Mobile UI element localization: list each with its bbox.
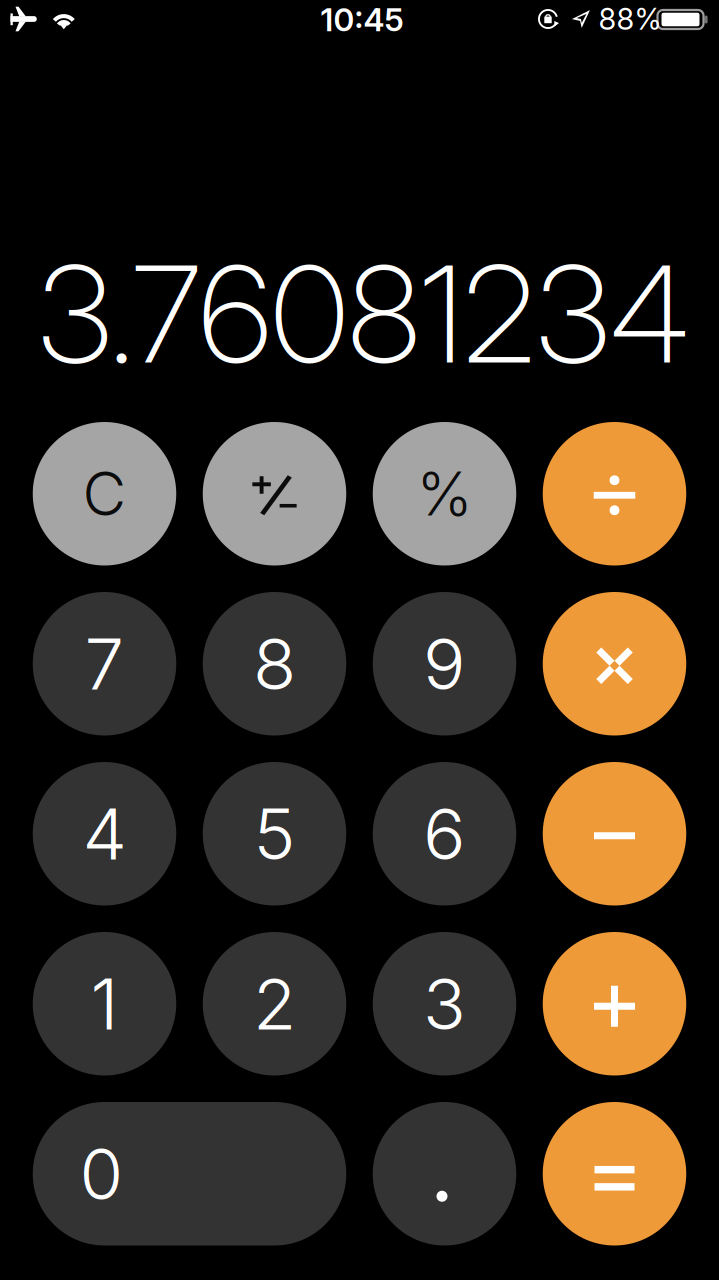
staticText: 3.76081234 xyxy=(38,233,689,395)
staticText: % xyxy=(416,457,472,530)
button[interactable]: 6 xyxy=(373,762,516,905)
staticText: 6 xyxy=(423,791,466,876)
button[interactable]: Plus minus xyxy=(203,422,346,565)
staticText: 1 xyxy=(90,961,118,1046)
button[interactable]: 7 xyxy=(33,592,176,735)
staticText: 0 xyxy=(79,1131,123,1216)
button[interactable]: Plus xyxy=(543,932,686,1075)
staticText: 3 xyxy=(423,961,466,1046)
button[interactable]: Divide xyxy=(543,422,686,565)
button[interactable]: 8 xyxy=(203,592,346,735)
button[interactable]: Minus xyxy=(543,762,686,905)
button[interactable]: Equals xyxy=(543,1102,686,1245)
button[interactable]: % xyxy=(373,422,516,565)
staticText: 4 xyxy=(82,791,126,876)
button[interactable]: 1 xyxy=(33,932,176,1075)
button[interactable]: 0 xyxy=(33,1102,346,1245)
button[interactable]: 9 xyxy=(373,592,516,735)
staticText: 9 xyxy=(423,621,466,706)
button[interactable]: Decimal point xyxy=(373,1102,516,1245)
button[interactable]: Multiply xyxy=(543,592,686,735)
button[interactable]: 2 xyxy=(203,932,346,1075)
button[interactable]: C xyxy=(33,422,176,565)
staticText: 2 xyxy=(253,961,296,1046)
staticText: C xyxy=(82,457,126,530)
staticText: 5 xyxy=(253,791,295,876)
button[interactable]: 3 xyxy=(373,932,516,1075)
staticText: 7 xyxy=(84,621,124,706)
staticText: 10:45 xyxy=(320,0,403,39)
button[interactable]: 5 xyxy=(203,762,346,905)
staticText: 8 xyxy=(253,621,296,706)
staticText: 88% xyxy=(598,1,661,37)
button[interactable]: 4 xyxy=(33,762,176,905)
